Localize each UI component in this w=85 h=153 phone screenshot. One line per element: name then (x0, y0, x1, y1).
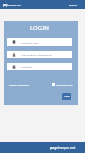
staticText: Password (21, 65, 33, 68)
button[interactable]: English (69, 3, 78, 6)
button[interactable]: Company Alias (7, 38, 72, 46)
button[interactable]: Password (7, 63, 72, 70)
staticText: English (69, 3, 78, 6)
staticText: Company Alias (21, 41, 39, 44)
button[interactable]: Forgot Password? (9, 83, 29, 86)
staticText: Your Email or Employee ID (21, 53, 53, 56)
staticText: paycheque.net (3, 3, 21, 6)
staticText: Login (64, 95, 70, 98)
button[interactable]: Remember Me (52, 83, 73, 86)
staticText: LOGIN (30, 23, 49, 31)
staticText: paycheque.net (50, 145, 76, 150)
button[interactable]: paycheque.net (50, 145, 76, 150)
button[interactable]: Your Email or Employee ID (7, 51, 72, 58)
staticText: Remember Me (56, 83, 73, 86)
button[interactable]: paycheque.net (3, 3, 21, 6)
button[interactable]: Login (62, 93, 71, 100)
